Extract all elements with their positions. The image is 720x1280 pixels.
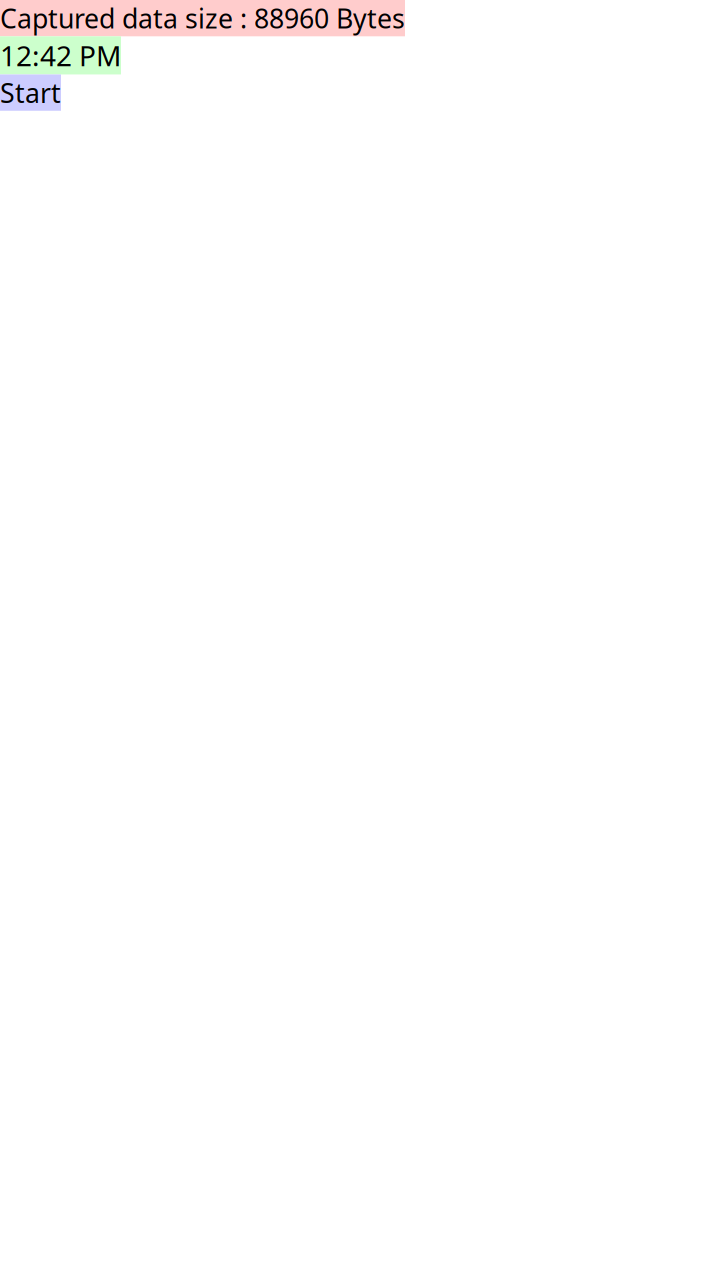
staticText: 12:42 PM [0, 36, 121, 74]
staticText: Captured data size : 88960 Bytes [0, 0, 405, 36]
staticText: Start [0, 74, 61, 111]
